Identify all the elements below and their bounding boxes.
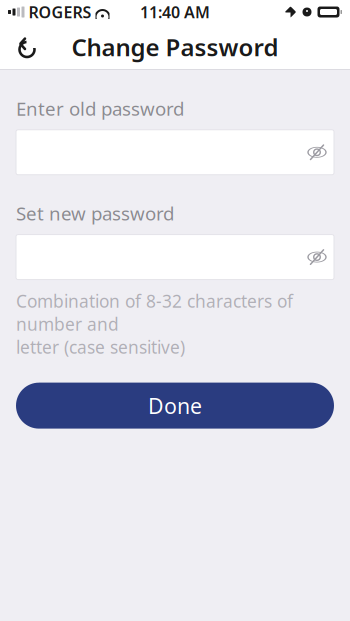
staticText: 11:40 AM	[140, 1, 210, 23]
button[interactable]: Show password	[300, 240, 334, 274]
button[interactable]: Show password	[300, 135, 334, 169]
button[interactable]: Done	[16, 383, 334, 429]
staticText: Combination of 8-32 characters of number…	[16, 290, 293, 359]
staticText: Enter old password	[16, 96, 184, 121]
staticText: Set new password	[16, 201, 174, 226]
staticText: ROGERS	[28, 1, 91, 23]
button[interactable]: Back	[4, 24, 50, 70]
staticText: Done	[148, 391, 202, 420]
staticText: Change Password	[71, 31, 278, 63]
